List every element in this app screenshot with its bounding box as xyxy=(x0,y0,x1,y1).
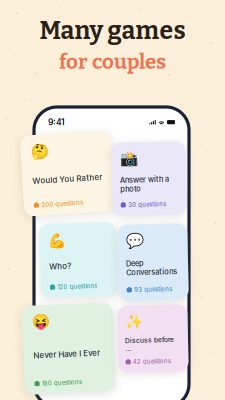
staticText: Answer with a xyxy=(120,175,169,184)
staticText: 42 questions xyxy=(132,358,170,365)
staticText: 93 questions xyxy=(133,286,171,293)
staticText: 180 questions xyxy=(40,379,80,386)
staticText: Conversations xyxy=(126,267,177,276)
button[interactable]: 😝 xyxy=(23,304,114,393)
staticText: Would You Rather xyxy=(32,174,102,184)
staticText: Who? xyxy=(49,261,71,270)
staticText: for couples xyxy=(59,50,166,74)
staticText: 💬 xyxy=(126,232,144,249)
staticText: 📸 xyxy=(120,150,138,167)
staticText: 120 questions xyxy=(56,283,96,290)
staticText: Discuss before … xyxy=(125,336,174,352)
button[interactable]: 📸 xyxy=(112,142,186,215)
button[interactable]: 💬 xyxy=(118,224,188,300)
staticText: 🤔 xyxy=(32,141,50,158)
staticText: 😝 xyxy=(33,312,51,329)
staticText: Never Have I Ever xyxy=(33,349,100,359)
staticText: ✨ xyxy=(125,313,143,330)
button[interactable]: 🤔 xyxy=(22,133,113,214)
button[interactable]: ✨ xyxy=(118,305,188,372)
staticText: Deep xyxy=(126,258,144,267)
staticText: photo xyxy=(120,184,141,193)
staticText: 9:41 xyxy=(48,117,65,127)
staticText: 30 questions xyxy=(127,201,165,208)
staticText: 💪 xyxy=(49,231,67,248)
staticText: 200 questions xyxy=(39,200,81,207)
button[interactable]: 💪 xyxy=(40,223,117,297)
staticText: Many games xyxy=(39,16,185,46)
